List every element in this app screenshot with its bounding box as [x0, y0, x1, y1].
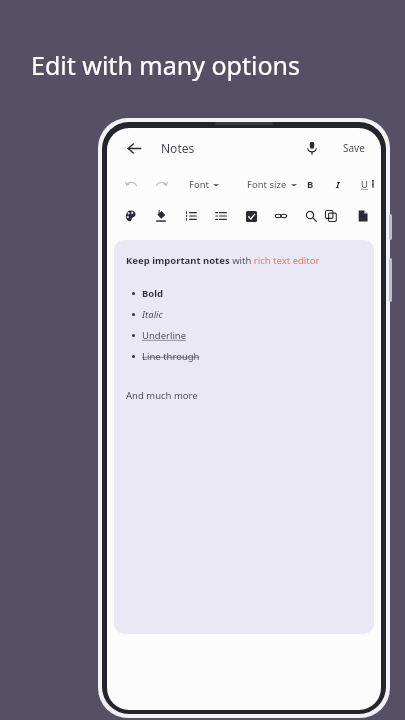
button[interactable]: Save	[337, 137, 371, 159]
button[interactable]: Numbered list	[181, 206, 201, 226]
button[interactable]: Highlight color	[151, 206, 171, 226]
button[interactable]: I	[327, 173, 349, 195]
staticText: I	[336, 178, 340, 191]
button[interactable]: Redo	[149, 172, 173, 196]
staticText: Notes	[161, 140, 195, 156]
staticText: Keep important notes with rich text edit…	[126, 254, 320, 267]
button[interactable]: Keep important notes with rich text edit…	[114, 240, 374, 634]
staticText: Edit with many options	[31, 48, 300, 82]
button[interactable]: Search	[301, 206, 321, 226]
button[interactable]: Font	[187, 174, 221, 195]
button[interactable]: B	[299, 173, 321, 195]
button[interactable]: Voice input	[299, 135, 325, 161]
button[interactable]: Bullet list	[211, 206, 231, 226]
button[interactable]: Insert link	[271, 206, 291, 226]
staticText: Line through	[142, 350, 200, 363]
staticText: Font	[189, 178, 209, 191]
staticText: Font size	[247, 178, 287, 191]
button[interactable]: Copy	[321, 206, 341, 226]
staticText: B	[307, 178, 314, 191]
button[interactable]: Checklist	[241, 206, 261, 226]
button[interactable]: Export	[357, 206, 369, 226]
staticText: Save	[343, 141, 365, 155]
staticText: Underline	[142, 329, 187, 342]
button[interactable]: Font size	[245, 174, 299, 195]
button[interactable]: Back	[121, 135, 147, 161]
staticText: Bold	[142, 287, 164, 300]
button[interactable]: Undo	[119, 172, 143, 196]
staticText: And much more	[126, 389, 198, 402]
staticText: U	[361, 178, 368, 191]
button[interactable]: U	[355, 173, 373, 195]
button[interactable]: Text color	[121, 206, 141, 226]
staticText: Italic	[142, 308, 163, 321]
